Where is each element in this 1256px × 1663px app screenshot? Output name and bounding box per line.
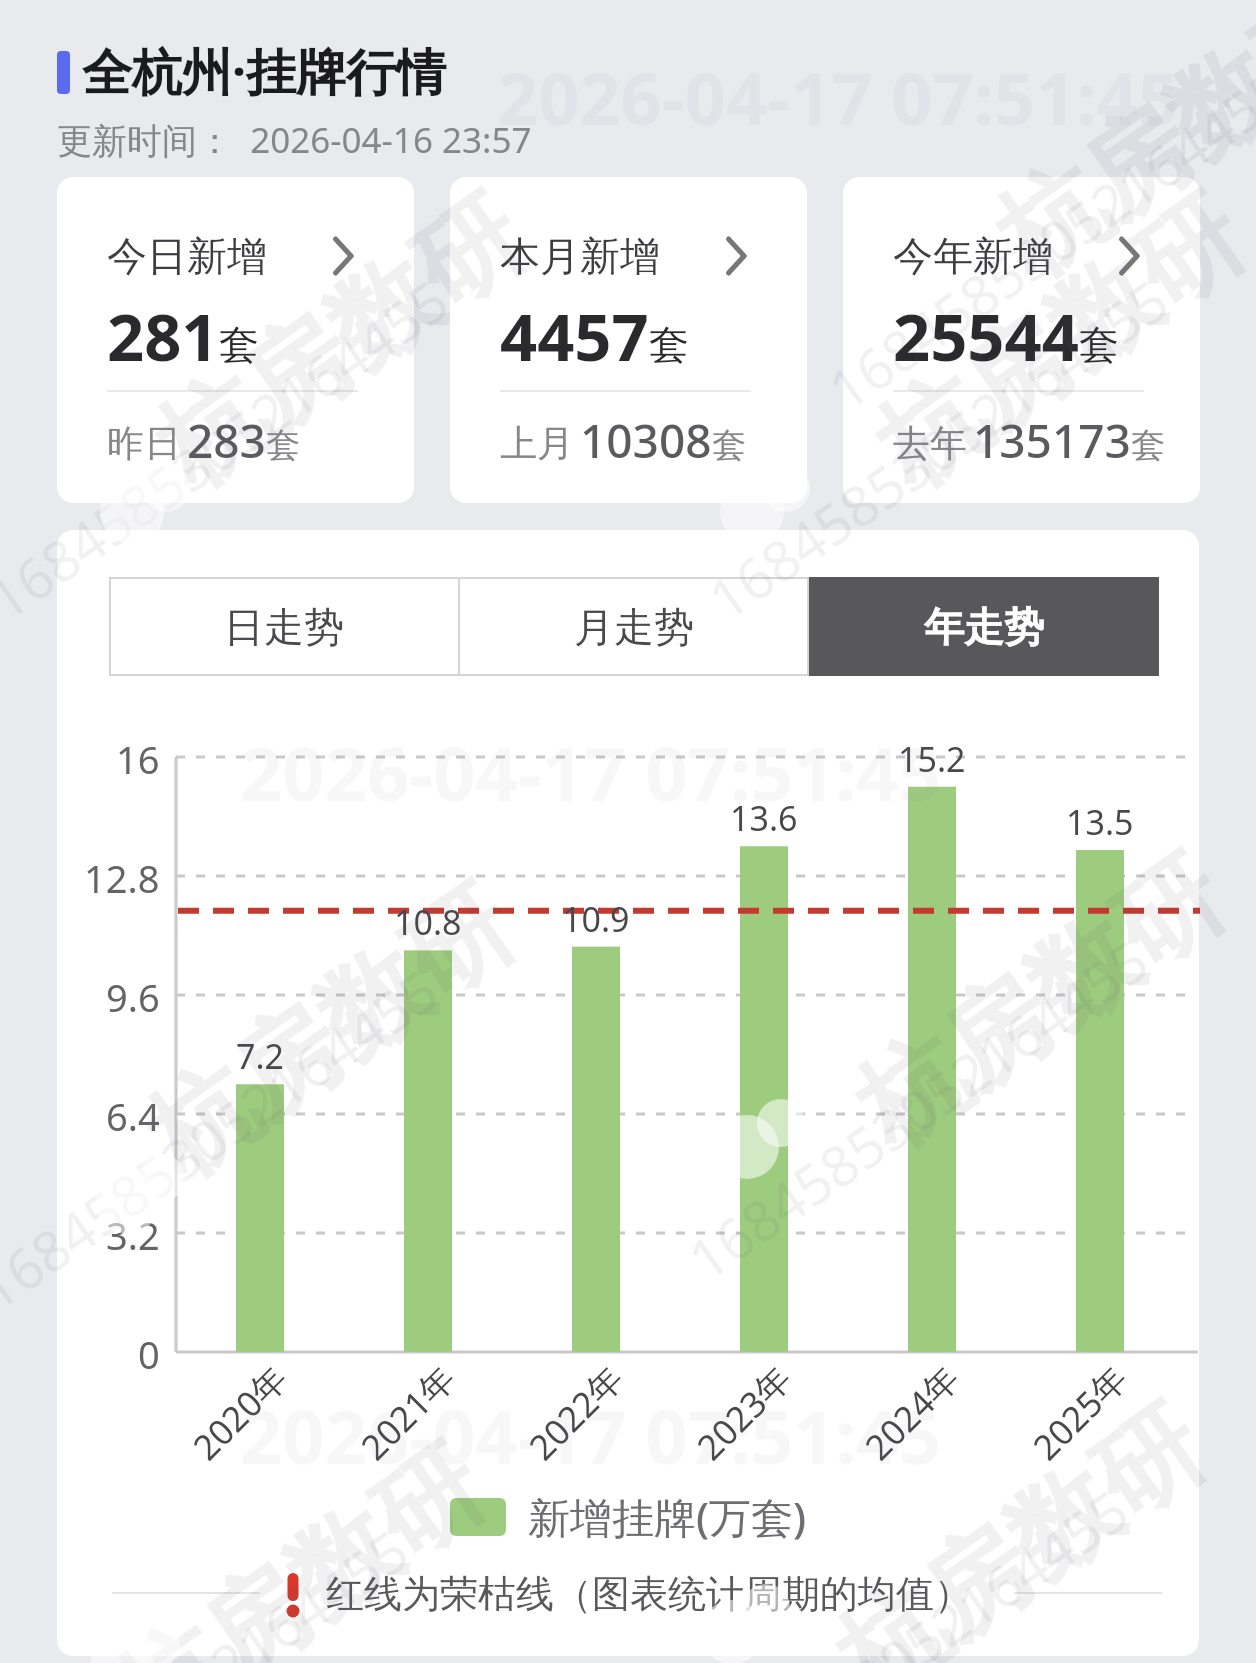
staticText: 135173: [973, 409, 1131, 472]
staticText: 16: [116, 733, 160, 781]
staticText: 2024年: [854, 1354, 965, 1465]
staticText: 杭房数研: [972, 0, 1256, 305]
staticText: 7.2: [236, 1033, 285, 1077]
staticText: 25544: [893, 292, 1079, 381]
staticText: 10.9: [562, 896, 630, 940]
staticText: 16845853052164455: [0, 952, 452, 1326]
staticText: 杭房数研: [92, 1419, 508, 1663]
staticText: 16845853052164455: [672, 922, 1162, 1296]
staticText: 10.8: [394, 899, 462, 943]
staticText: 15.2: [898, 736, 966, 780]
staticText: 4457: [500, 292, 649, 381]
staticText: 全杭州·挂牌行情: [82, 37, 447, 105]
staticText: 今年新增: [893, 231, 1053, 281]
staticText: 上月: [500, 420, 574, 467]
staticText: 2022年: [518, 1354, 629, 1465]
staticText: 套: [1131, 424, 1165, 467]
staticText: 今日新增: [107, 231, 267, 281]
staticText: 红线为荣枯线（图表统计周期的均值）: [326, 1570, 972, 1618]
staticText: 2023年: [686, 1354, 797, 1465]
staticText: 16845853052164455: [0, 1512, 422, 1663]
staticText: 2026-04-17 07:51:45: [497, 48, 1179, 146]
staticText: 日走势: [224, 602, 344, 652]
staticText: 套: [1079, 320, 1119, 370]
staticText: 套: [712, 424, 746, 467]
staticText: 13.5: [1066, 799, 1134, 843]
staticText: 月走势: [574, 602, 694, 652]
staticText: 本月新增: [500, 231, 660, 281]
staticText: 更新时间： 2026-04-16 23:57: [57, 116, 532, 164]
staticText: 年走势: [924, 602, 1044, 652]
staticText: 套: [266, 424, 300, 467]
staticText: 16845853052164455: [812, 52, 1256, 426]
staticText: 3.2: [106, 1209, 160, 1257]
staticText: 9.6: [106, 971, 160, 1019]
staticText: 2025年: [1022, 1354, 1133, 1465]
staticText: 6.4: [106, 1090, 160, 1138]
staticText: 2021年: [350, 1354, 461, 1465]
staticText: 10308: [580, 409, 712, 472]
staticText: 套: [649, 320, 689, 370]
staticText: 新增挂牌(万套): [528, 1488, 807, 1545]
staticText: 去年: [893, 420, 967, 467]
staticText: 16845853052164455: [0, 262, 462, 636]
staticText: 套: [219, 320, 259, 370]
staticText: 2026-04-17 07:51:45: [240, 722, 941, 823]
staticText: 2020年: [182, 1354, 293, 1465]
staticText: 12.8: [84, 852, 160, 900]
staticText: 杭房数研: [852, 169, 1256, 515]
staticText: 13.6: [730, 795, 798, 839]
staticText: 杭房数研: [132, 169, 548, 515]
staticText: 昨日: [107, 420, 181, 467]
staticText: 16845853052164455: [692, 262, 1182, 636]
staticText: 杭房数研: [812, 1379, 1228, 1663]
staticText: 281: [107, 292, 219, 381]
staticText: 0: [138, 1328, 160, 1376]
staticText: 16845853052164455: [652, 1472, 1142, 1663]
staticText: 杭房数研: [832, 829, 1248, 1175]
staticText: 283: [187, 409, 266, 472]
staticText: 2026-04-17 07:51:45: [240, 1385, 941, 1486]
staticText: 杭房数研: [122, 859, 538, 1205]
